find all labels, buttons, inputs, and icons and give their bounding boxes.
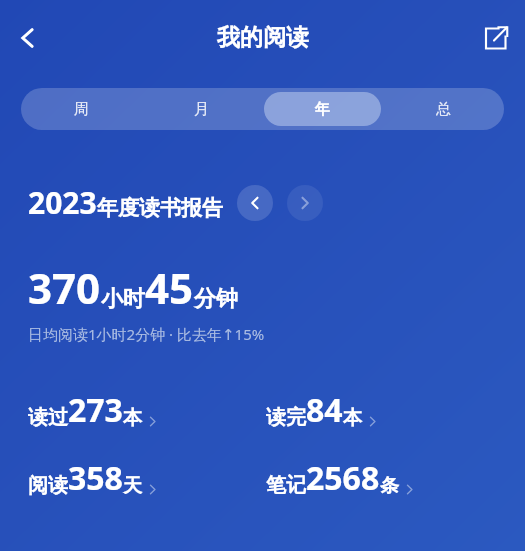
staticText: 370 <box>28 259 101 316</box>
staticText: 本 <box>123 406 142 430</box>
button[interactable]: Share <box>471 14 519 62</box>
staticText: 273 <box>68 388 123 432</box>
button[interactable]: 周 <box>23 92 139 126</box>
staticText: 2568 <box>306 456 380 500</box>
button[interactable]: 总 <box>385 92 502 126</box>
staticText: 条 <box>380 474 399 498</box>
button[interactable]: 阅读 <box>28 456 159 500</box>
button[interactable]: 读完 <box>266 388 379 432</box>
staticText: 周 <box>74 100 89 119</box>
staticText: 日均阅读1小时2分钟 · 比去年↑15% <box>28 324 265 344</box>
button[interactable]: Previous year <box>237 185 273 221</box>
button[interactable]: Back <box>2 12 54 64</box>
staticText: 358 <box>68 456 123 500</box>
staticText: 阅读 <box>28 473 68 498</box>
button[interactable]: 月 <box>143 92 260 126</box>
staticText: 分钟 <box>194 285 238 313</box>
staticText: 年 <box>315 100 330 119</box>
button[interactable]: 年 <box>264 92 381 126</box>
button[interactable]: Next year <box>287 185 323 221</box>
staticText: 月 <box>194 100 209 119</box>
staticText: 2023 <box>28 182 97 223</box>
button[interactable]: 笔记 <box>266 456 416 500</box>
staticText: 45 <box>145 259 194 316</box>
staticText: 天 <box>123 474 142 498</box>
button[interactable]: 读过 <box>28 388 159 432</box>
staticText: 读过 <box>28 405 68 430</box>
staticText: 本 <box>343 406 362 430</box>
staticText: 小时 <box>101 285 145 313</box>
staticText: 笔记 <box>266 473 306 498</box>
staticText: 总 <box>436 100 451 119</box>
staticText: 我的阅读 <box>217 23 309 52</box>
staticText: 读完 <box>266 405 306 430</box>
staticText: 84 <box>306 388 343 432</box>
staticText: 年度读书报告 <box>97 195 223 221</box>
